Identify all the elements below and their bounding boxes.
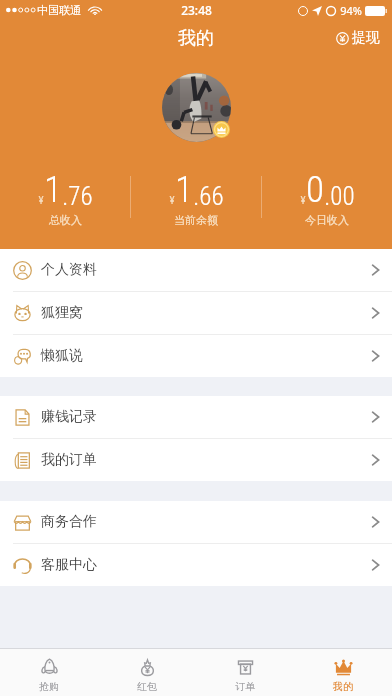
button[interactable]: 我的 xyxy=(294,655,392,696)
staticText: 总收入 xyxy=(49,213,82,227)
staticText: 红包 xyxy=(137,680,157,693)
button[interactable]: 狐狸窝 xyxy=(0,292,392,334)
button[interactable]: 个人资料 xyxy=(0,249,392,291)
staticText: 0 xyxy=(306,168,324,211)
staticText: ¥ xyxy=(300,194,306,207)
staticText: 94% xyxy=(340,3,362,18)
staticText: 中国联通 xyxy=(37,3,81,17)
staticText: .66 xyxy=(193,182,224,211)
button[interactable]: 红包 xyxy=(98,655,196,696)
staticText: 狐狸窝 xyxy=(41,304,83,322)
staticText: 今日收入 xyxy=(305,213,349,227)
staticText: .76 xyxy=(62,182,93,211)
button[interactable]: 懒狐说 xyxy=(0,335,392,377)
button[interactable]: 抢购 xyxy=(0,655,98,696)
button[interactable]: ¥ xyxy=(0,168,130,227)
staticText: .00 xyxy=(324,182,355,211)
button[interactable]: 商务合作 xyxy=(0,501,392,543)
button[interactable]: Avatar xyxy=(162,73,231,142)
staticText: 我的 xyxy=(178,27,214,50)
button[interactable]: 提现 xyxy=(324,23,392,53)
staticText: 抢购 xyxy=(39,680,59,693)
staticText: 当前余额 xyxy=(174,213,218,227)
button[interactable]: 赚钱记录 xyxy=(0,396,392,438)
button[interactable]: 我的订单 xyxy=(0,439,392,481)
button[interactable]: 订单 xyxy=(196,655,294,696)
staticText: 订单 xyxy=(235,680,255,693)
staticText: 个人资料 xyxy=(41,261,97,279)
button[interactable]: 客服中心 xyxy=(0,544,392,586)
staticText: 客服中心 xyxy=(41,556,97,574)
staticText: 提现 xyxy=(352,29,380,47)
staticText: ¥ xyxy=(38,194,44,207)
button[interactable]: ¥ xyxy=(131,168,261,227)
staticText: 商务合作 xyxy=(41,513,97,531)
staticText: 懒狐说 xyxy=(41,347,83,365)
staticText: 1 xyxy=(175,168,193,211)
staticText: 23:48 xyxy=(181,2,212,18)
staticText: 1 xyxy=(44,168,62,211)
staticText: 我的 xyxy=(333,680,353,693)
staticText: ¥ xyxy=(169,194,175,207)
staticText: 我的订单 xyxy=(41,451,97,469)
staticText: 赚钱记录 xyxy=(41,408,97,426)
button[interactable]: ¥ xyxy=(262,168,392,227)
